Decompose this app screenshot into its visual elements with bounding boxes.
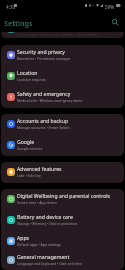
button[interactable]: Accounts and backup xyxy=(1,114,124,135)
staticText: Accounts and backup xyxy=(17,118,69,125)
staticText: Safety and emergency xyxy=(17,91,71,98)
staticText: Apps xyxy=(17,235,29,242)
button[interactable]: Location xyxy=(1,66,124,87)
button[interactable]: Search xyxy=(109,16,122,29)
staticText: Google services xyxy=(17,146,43,151)
staticText: 4:30 xyxy=(6,4,16,10)
button[interactable]: Security and privacy xyxy=(1,45,124,66)
staticText: Biometrics • Permission manager xyxy=(17,56,71,61)
staticText: Digital Wellbeing and parental controls xyxy=(17,193,111,200)
staticText: General management xyxy=(17,254,70,261)
button[interactable]: Battery and device care xyxy=(1,210,124,231)
staticText: Google xyxy=(17,139,35,146)
staticText: Advanced features xyxy=(17,166,62,173)
staticText: Security and privacy xyxy=(17,49,65,56)
staticText: Battery and device care xyxy=(17,214,73,221)
staticText: Language and keyboard • Date and time xyxy=(17,261,83,266)
staticText: Screen time • App timers xyxy=(17,200,57,205)
button[interactable]: Apps xyxy=(1,231,124,252)
staticText: Labs • Side key xyxy=(17,173,41,178)
staticText: Storage • Memory • Device protection xyxy=(17,221,78,226)
staticText: Connections • Sounds and vibration • Not… xyxy=(17,32,98,37)
staticText: Location requests xyxy=(17,77,46,82)
staticText: Default apps • App settings xyxy=(17,242,61,247)
staticText: Location xyxy=(17,70,38,77)
button[interactable]: Digital Wellbeing and parental controls xyxy=(1,189,124,210)
staticText: Manage accounts • Smart Switch xyxy=(17,125,70,130)
button[interactable]: Advanced features xyxy=(1,162,124,183)
button[interactable]: Google xyxy=(1,135,124,156)
button[interactable]: General management xyxy=(1,252,124,270)
staticText: 59% xyxy=(105,4,115,10)
staticText: Medical info • Wireless emergency alerts xyxy=(17,98,83,103)
button[interactable]: Safety and emergency xyxy=(1,87,124,108)
staticText: Settings xyxy=(4,18,33,28)
